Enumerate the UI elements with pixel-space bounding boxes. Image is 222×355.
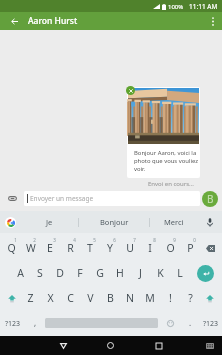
button[interactable]: Bonjour bbox=[79, 211, 149, 233]
staticText: ? bbox=[188, 291, 193, 305]
button[interactable]: A bbox=[11, 259, 30, 285]
button[interactable]: Switch keyboard bbox=[202, 336, 218, 355]
staticText: 4 bbox=[73, 237, 76, 243]
staticText: B bbox=[207, 192, 214, 206]
staticText: Merci bbox=[164, 217, 184, 227]
button[interactable]: Bonjour Aaron, voici la photo que vous v… bbox=[127, 87, 200, 178]
button[interactable]: 3 bbox=[40, 233, 60, 259]
staticText: D bbox=[56, 266, 64, 280]
staticText: 100% bbox=[168, 3, 184, 11]
staticText: V bbox=[87, 291, 94, 305]
button[interactable]: Enter bbox=[190, 259, 220, 285]
staticText: , bbox=[34, 317, 37, 328]
staticText: 5 bbox=[93, 237, 96, 243]
button[interactable]: Shift bbox=[2, 285, 21, 311]
staticText: M bbox=[145, 291, 155, 305]
button[interactable]: H bbox=[110, 259, 130, 285]
staticText: K bbox=[157, 266, 164, 280]
button[interactable]: Recent apps bbox=[150, 336, 167, 355]
staticText: B bbox=[107, 291, 114, 305]
staticText: C bbox=[67, 291, 74, 305]
button[interactable]: Send bbox=[202, 191, 218, 207]
staticText: H bbox=[116, 266, 124, 280]
staticText: 7 bbox=[133, 237, 136, 243]
button[interactable]: K bbox=[150, 259, 170, 285]
staticText: Je bbox=[46, 217, 53, 227]
button[interactable]: Backspace bbox=[200, 233, 220, 259]
staticText: F bbox=[77, 266, 83, 280]
staticText: Q bbox=[7, 241, 16, 255]
button[interactable]: 5 bbox=[80, 233, 100, 259]
button[interactable]: Voice input bbox=[197, 211, 222, 233]
button[interactable]: 9 bbox=[160, 233, 180, 259]
staticText: U bbox=[126, 241, 134, 255]
button[interactable]: ?123 bbox=[0, 311, 25, 336]
button[interactable]: 6 bbox=[100, 233, 120, 259]
button[interactable]: X bbox=[40, 285, 60, 311]
button[interactable]: 1 bbox=[2, 233, 21, 259]
button[interactable]: Attach file bbox=[0, 186, 24, 211]
staticText: 11:11 AM bbox=[189, 2, 218, 11]
staticText: Envoyer un message bbox=[30, 194, 94, 203]
staticText: ?123 bbox=[203, 319, 219, 329]
staticText: Bonjour Aaron, voici la photo que vous v… bbox=[134, 149, 198, 173]
button[interactable]: ?123 bbox=[199, 311, 222, 336]
button[interactable]: F bbox=[70, 259, 90, 285]
staticText: Z bbox=[27, 291, 34, 305]
staticText: 6 bbox=[113, 237, 116, 243]
staticText: 8 bbox=[153, 237, 156, 243]
button[interactable]: N bbox=[120, 285, 140, 311]
button[interactable]: Cancel sending bbox=[126, 86, 135, 95]
staticText: N bbox=[126, 291, 134, 305]
button[interactable]: Back bbox=[0, 12, 28, 30]
staticText: P bbox=[187, 241, 194, 255]
button[interactable]: Z bbox=[21, 285, 40, 311]
button[interactable]: . bbox=[182, 311, 199, 336]
button[interactable]: D bbox=[50, 259, 70, 285]
staticText: S bbox=[37, 266, 43, 280]
button[interactable]: Google search bbox=[0, 211, 20, 233]
staticText: I bbox=[148, 241, 152, 255]
staticText: 3 bbox=[53, 237, 56, 243]
staticText: W bbox=[26, 241, 36, 255]
staticText: E bbox=[47, 241, 53, 255]
staticText: Y bbox=[107, 241, 113, 255]
button[interactable]: J bbox=[130, 259, 150, 285]
button[interactable]: , bbox=[25, 311, 45, 336]
staticText: A bbox=[17, 266, 24, 280]
staticText: ?123 bbox=[5, 319, 21, 329]
button[interactable]: B bbox=[100, 285, 120, 311]
button[interactable]: Back bbox=[55, 336, 72, 355]
staticText: ! bbox=[169, 291, 172, 305]
button[interactable]: 8 bbox=[140, 233, 160, 259]
button[interactable]: Envoyer un message bbox=[24, 191, 200, 206]
button[interactable]: 2 bbox=[21, 233, 40, 259]
staticText: G bbox=[96, 266, 104, 280]
staticText: L bbox=[177, 266, 183, 280]
button[interactable]: ? bbox=[180, 285, 200, 311]
staticText: J bbox=[139, 266, 142, 280]
button[interactable]: ! bbox=[160, 285, 180, 311]
button[interactable]: Merci bbox=[150, 211, 197, 233]
staticText: 9 bbox=[173, 237, 176, 243]
staticText: 0 bbox=[193, 237, 196, 243]
staticText: 1 bbox=[14, 237, 17, 243]
button[interactable]: S bbox=[30, 259, 50, 285]
button[interactable]: L bbox=[170, 259, 190, 285]
button[interactable]: 4 bbox=[60, 233, 80, 259]
button[interactable]: 0 bbox=[180, 233, 200, 259]
button[interactable]: Emoji bbox=[158, 311, 182, 336]
button[interactable]: More options bbox=[204, 12, 222, 30]
button[interactable]: M bbox=[140, 285, 160, 311]
button[interactable]: Je bbox=[20, 211, 78, 233]
button[interactable]: Home bbox=[102, 336, 119, 355]
button[interactable]: V bbox=[80, 285, 100, 311]
button[interactable]: 7 bbox=[120, 233, 140, 259]
staticText: T bbox=[87, 241, 93, 255]
button[interactable]: C bbox=[60, 285, 80, 311]
button[interactable]: G bbox=[90, 259, 110, 285]
staticText: Aaron Hurst bbox=[28, 15, 78, 27]
staticText: 2 bbox=[33, 237, 36, 243]
button[interactable]: Shift bbox=[200, 285, 220, 311]
